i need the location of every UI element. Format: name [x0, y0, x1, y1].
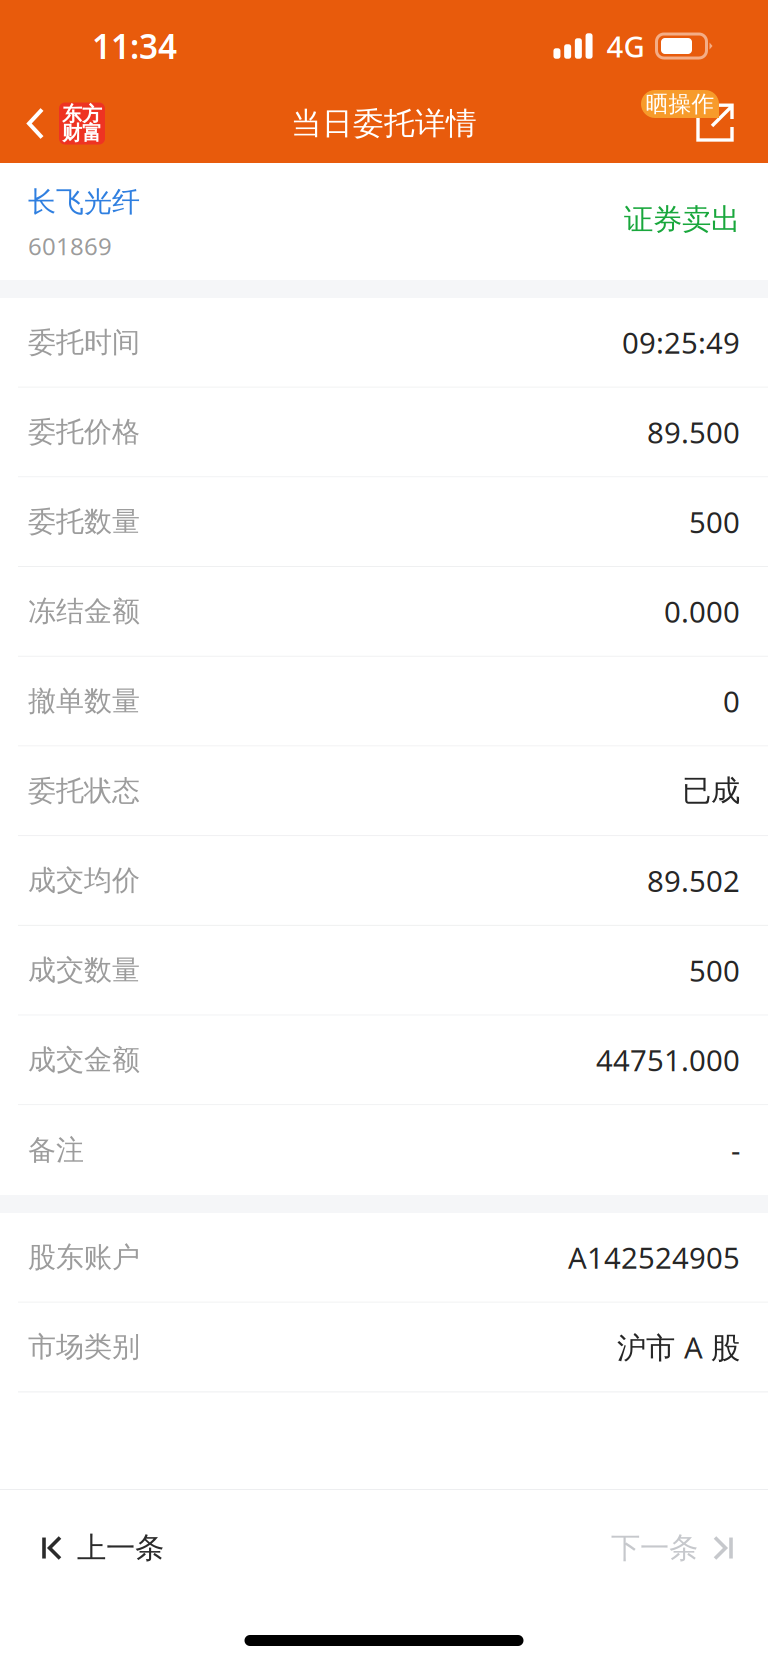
staticText: 沪市 A 股	[617, 1328, 740, 1367]
button[interactable]: 下一条	[581, 1490, 768, 1606]
staticText: 下一条	[611, 1530, 698, 1566]
staticText: A142524905	[568, 1238, 740, 1277]
staticText: 成交金额	[28, 1043, 140, 1077]
staticText: 冻结金额	[28, 594, 140, 629]
staticText: 晒操作	[645, 90, 714, 118]
staticText: 已成	[682, 773, 740, 809]
staticText: 委托时间	[28, 325, 140, 360]
staticText: 委托价格	[28, 415, 140, 449]
staticText: 财富	[62, 121, 102, 145]
staticText: 0	[723, 682, 740, 721]
button[interactable]: Share	[641, 84, 768, 163]
staticText: 上一条	[77, 1530, 164, 1566]
staticText: 当日委托详情	[291, 105, 477, 142]
staticText: 委托数量	[28, 505, 140, 539]
staticText: 601869	[28, 230, 112, 262]
staticText: 东方	[62, 102, 102, 126]
staticText: 备注	[28, 1133, 84, 1167]
staticText: 4G	[606, 26, 644, 65]
staticText: 委托状态	[28, 774, 140, 808]
staticText: 股东账户	[28, 1240, 140, 1275]
button[interactable]: Back	[0, 84, 125, 163]
staticText: 市场类别	[28, 1330, 140, 1364]
staticText: 成交均价	[28, 863, 140, 898]
staticText: 长飞光纤	[28, 185, 140, 219]
staticText: 证券卖出	[624, 201, 740, 237]
staticText: 11:34	[92, 24, 177, 68]
staticText: 09:25:49	[622, 323, 740, 362]
staticText: 撤单数量	[28, 684, 140, 718]
staticText: 500	[689, 951, 740, 990]
staticText: 89.502	[647, 861, 740, 900]
staticText: 500	[689, 502, 740, 541]
staticText: 0.000	[664, 592, 740, 631]
staticText: 44751.000	[596, 1040, 740, 1079]
staticText: 成交数量	[28, 953, 140, 987]
staticText: -	[731, 1131, 740, 1170]
button[interactable]: 上一条	[0, 1490, 194, 1606]
staticText: 89.500	[647, 413, 740, 452]
